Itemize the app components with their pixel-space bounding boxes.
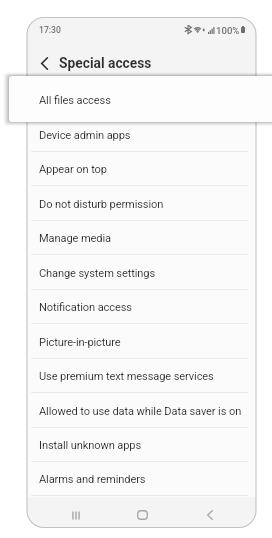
button[interactable]: Recent apps — [63, 502, 89, 528]
button[interactable]: Do not disturb permission — [27, 187, 256, 221]
button[interactable]: All files access — [27, 83, 256, 117]
button[interactable]: Manage media — [27, 221, 256, 255]
staticText: Alarms and reminders — [39, 473, 146, 486]
staticText: Special access — [59, 55, 152, 71]
button[interactable]: Picture-in-picture — [27, 325, 256, 359]
staticText: Manage media — [39, 232, 111, 245]
button[interactable]: Back — [197, 502, 223, 528]
staticText: Device admin apps — [39, 129, 131, 142]
button[interactable]: Alarms and reminders — [27, 462, 256, 496]
staticText: Appear on top — [39, 163, 107, 176]
staticText: 100% — [216, 25, 240, 36]
staticText: 17:30 — [39, 25, 61, 35]
button[interactable]: Navigate up — [35, 52, 54, 74]
button[interactable]: Allowed to use data while Data saver is … — [27, 394, 256, 428]
staticText: Picture-in-picture — [39, 336, 121, 349]
button[interactable]: Home — [129, 502, 155, 528]
button[interactable]: Appear on top — [27, 152, 256, 186]
staticText: Allowed to use data while Data saver is … — [39, 405, 242, 418]
staticText: All files access — [39, 94, 111, 107]
button[interactable]: Change system settings — [27, 256, 256, 290]
staticText: Use premium text message services — [39, 370, 214, 383]
staticText: Notification access — [39, 301, 132, 314]
staticText: Install unknown apps — [39, 439, 142, 452]
button[interactable]: Use premium text message services — [27, 359, 256, 393]
button[interactable]: Device admin apps — [27, 118, 256, 152]
button[interactable]: Install unknown apps — [27, 428, 256, 462]
button[interactable]: Notification access — [27, 290, 256, 324]
button[interactable]: All files access — [9, 76, 272, 122]
staticText: Change system settings — [39, 267, 156, 280]
staticText: Do not disturb permission — [39, 198, 164, 211]
staticText: All files access — [39, 94, 111, 107]
